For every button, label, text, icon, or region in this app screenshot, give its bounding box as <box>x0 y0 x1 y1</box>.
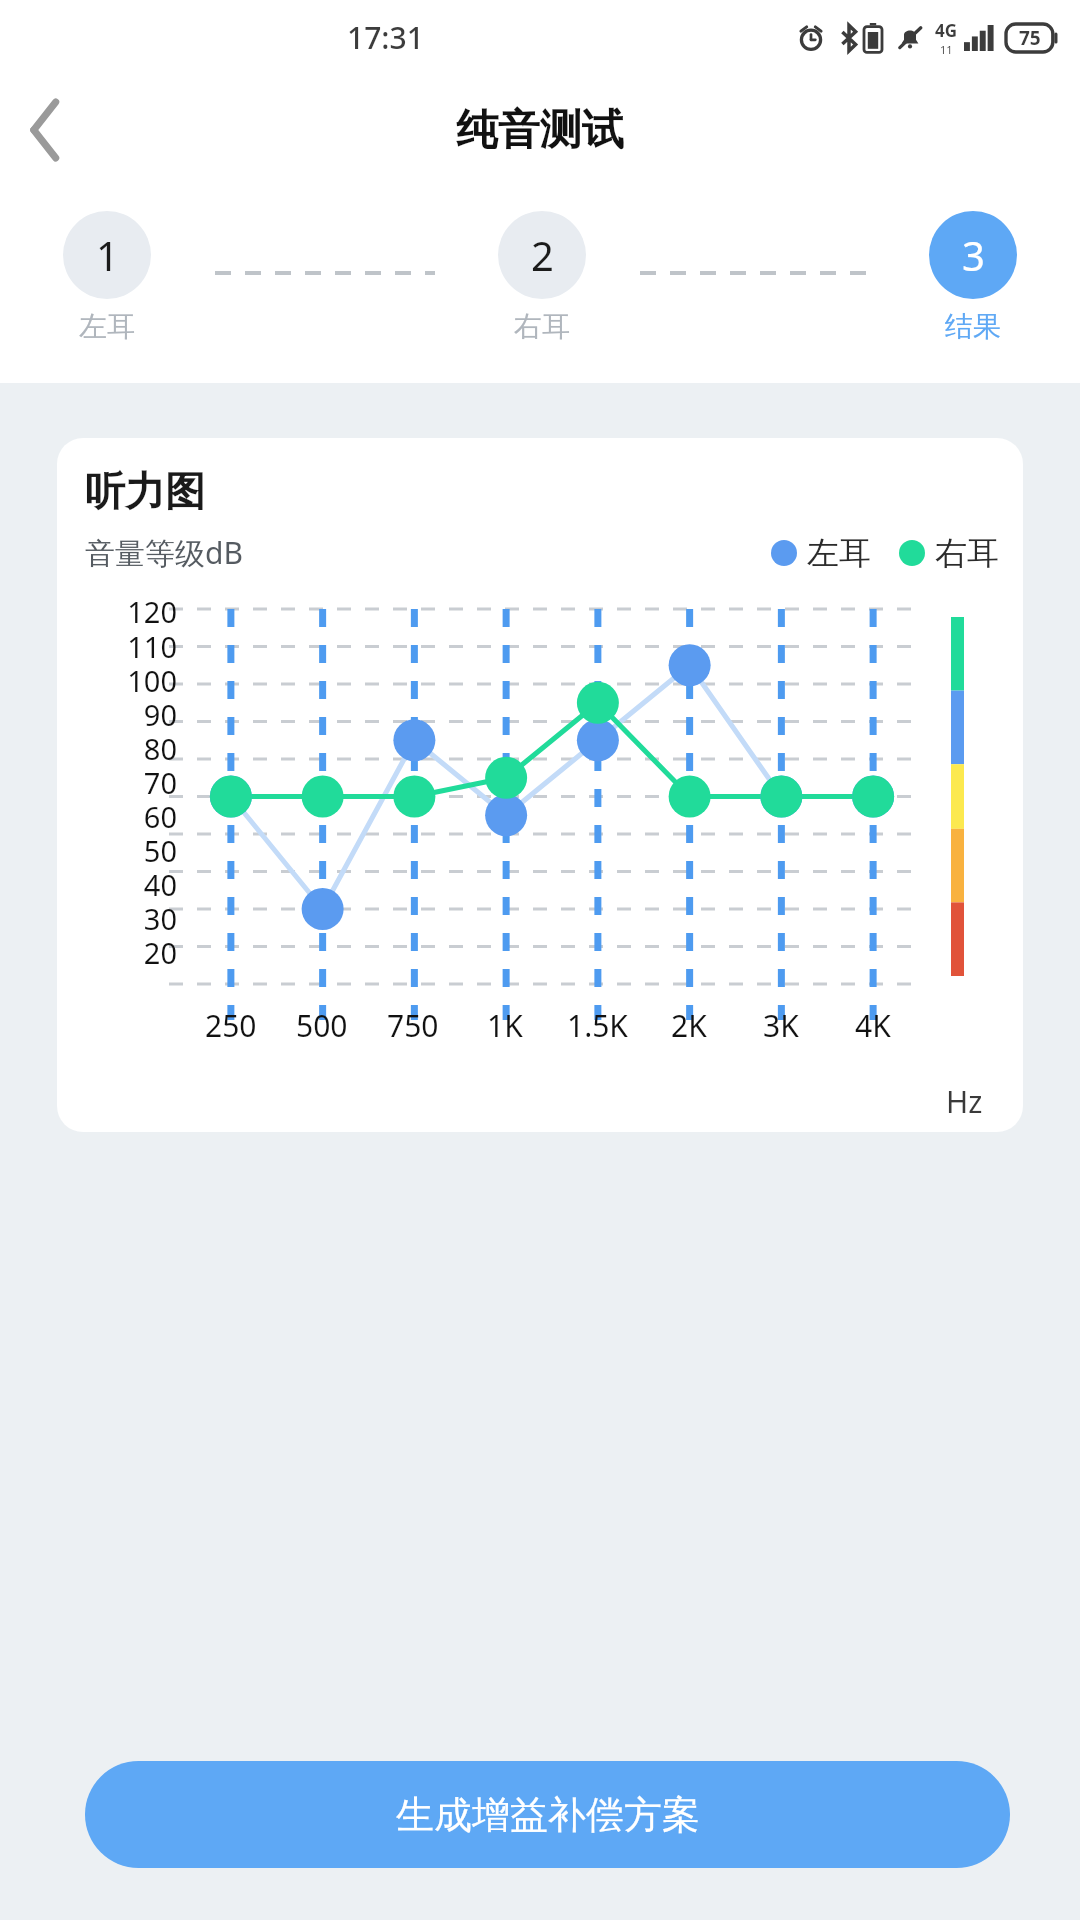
staticText: 40 <box>57 865 177 899</box>
staticText: 11 <box>940 42 953 57</box>
staticText: 生成增益补偿方案 <box>396 1791 700 1839</box>
staticText: 音量等级dB <box>85 532 243 573</box>
button[interactable]: 3 <box>929 211 1017 344</box>
staticText: 50 <box>57 831 177 865</box>
staticText: 听力图 <box>85 466 205 516</box>
staticText: 结果 <box>945 309 1001 344</box>
staticText: 左耳 <box>807 533 871 573</box>
staticText: 100 <box>57 661 177 695</box>
staticText: 4K <box>855 1005 891 1046</box>
staticText: 110 <box>57 627 177 661</box>
staticText: 90 <box>57 695 177 729</box>
staticText: 2 <box>531 228 554 282</box>
button[interactable]: 1 <box>63 211 151 344</box>
staticText: 4G <box>935 19 958 42</box>
staticText: 1 <box>96 228 119 282</box>
staticText: 70 <box>57 763 177 797</box>
staticText: 30 <box>57 899 177 933</box>
staticText: Hz <box>946 1081 983 1122</box>
staticText: 60 <box>57 797 177 831</box>
staticText: 3 <box>962 228 985 282</box>
button[interactable]: 2 <box>498 211 586 344</box>
button[interactable]: Back <box>14 94 86 166</box>
staticText: 500 <box>296 1005 348 1046</box>
staticText: 17:31 <box>347 17 424 58</box>
staticText: 120 <box>57 592 177 627</box>
staticText: 750 <box>387 1005 439 1046</box>
staticText: 3K <box>763 1005 799 1046</box>
staticText: 右耳 <box>514 309 570 344</box>
staticText: 右耳 <box>935 533 999 573</box>
staticText: 80 <box>57 729 177 763</box>
staticText: 2K <box>671 1005 707 1046</box>
staticText: 75 <box>1019 25 1041 51</box>
staticText: 250 <box>205 1005 257 1046</box>
button[interactable]: 生成增益补偿方案 <box>85 1761 1010 1868</box>
staticText: 1K <box>487 1005 523 1046</box>
staticText: 1.5K <box>567 1005 628 1046</box>
button[interactable]: 听力图 <box>57 438 1023 1132</box>
staticText: 20 <box>57 933 177 967</box>
staticText: 左耳 <box>79 309 135 344</box>
staticText: 纯音测试 <box>456 104 624 157</box>
